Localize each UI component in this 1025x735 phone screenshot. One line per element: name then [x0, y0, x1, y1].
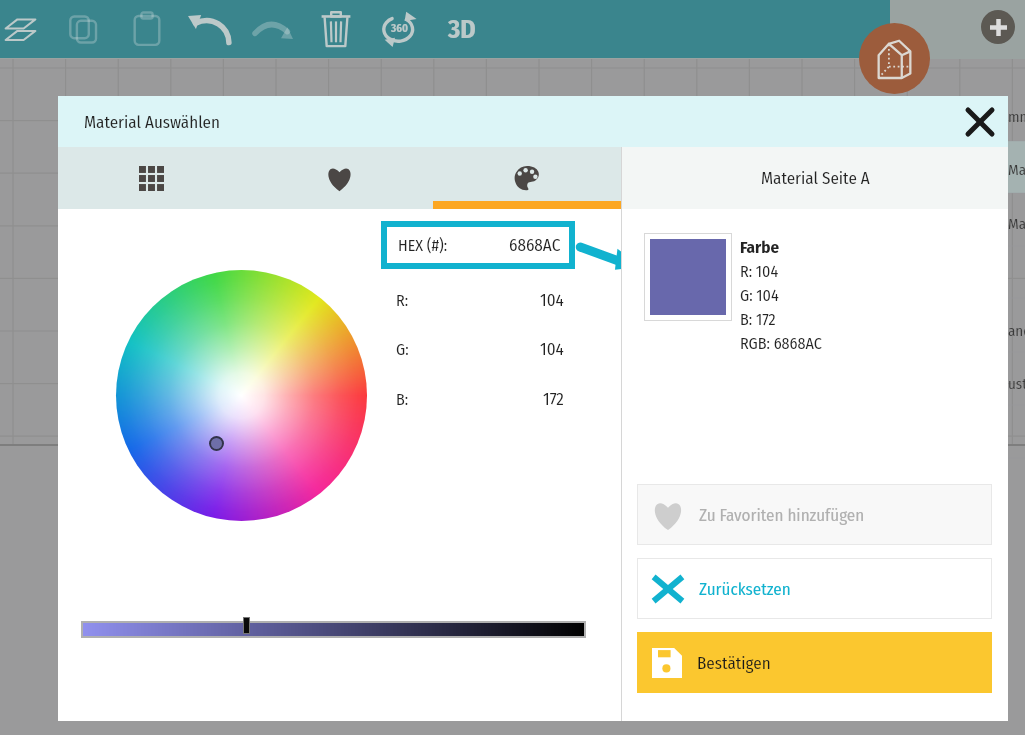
button[interactable]: Colour	[433, 147, 621, 209]
button[interactable]: Redo	[241, 0, 304, 58]
staticText: G:	[396, 340, 409, 359]
button[interactable]: Bestätigen	[637, 632, 992, 693]
button[interactable]: Copy	[52, 0, 115, 58]
button[interactable]: 360 view	[367, 0, 430, 58]
staticText: R:	[396, 291, 409, 310]
button[interactable]: Zurücksetzen	[637, 558, 992, 619]
staticText: Farbe	[740, 237, 779, 257]
staticText: HEX (#):	[398, 236, 448, 255]
button[interactable]: Paste	[115, 0, 178, 58]
staticText: 360	[391, 22, 408, 35]
staticText: R: 104	[740, 262, 779, 281]
staticText: RGB: 6868AC	[740, 334, 822, 353]
button[interactable]: mm	[1008, 105, 1025, 129]
staticText: G: 104	[740, 286, 779, 305]
button[interactable]: 3D view	[430, 0, 493, 58]
button[interactable]: Close	[959, 101, 1001, 143]
staticText: Mat	[1008, 161, 1025, 179]
staticText: B:	[396, 390, 409, 409]
staticText: Zu Favoriten hinzufügen	[699, 505, 865, 525]
staticText: 3D	[448, 14, 476, 45]
staticText: mm	[1008, 108, 1025, 126]
staticText: 104	[540, 290, 564, 310]
staticText: Material Auswählen	[84, 112, 220, 132]
button[interactable]: ust	[1008, 372, 1025, 396]
button[interactable]: Favourites	[245, 147, 433, 209]
button[interactable]: Delete	[304, 0, 367, 58]
button[interactable]: Zu Favoriten hinzufügen	[637, 484, 992, 545]
button[interactable]: Grid	[58, 147, 245, 209]
button[interactable]: and	[1008, 319, 1025, 343]
button[interactable]: Undo	[178, 0, 241, 58]
staticText: Bestätigen	[697, 653, 771, 673]
staticText: Mat	[1008, 215, 1025, 233]
button[interactable]: Add	[981, 10, 1015, 44]
button[interactable]	[83, 623, 584, 636]
button[interactable]: Mat	[1008, 158, 1025, 182]
staticText: and	[1008, 322, 1025, 340]
staticText: Zurücksetzen	[699, 579, 791, 599]
staticText: B: 172	[740, 310, 776, 329]
staticText: 104	[540, 339, 564, 359]
button[interactable]: House model	[859, 23, 930, 94]
button[interactable]: Mat	[1008, 212, 1025, 236]
button[interactable]: Layers	[0, 0, 52, 58]
staticText: ust	[1008, 375, 1025, 393]
button[interactable]: HEX (#):	[387, 227, 569, 263]
staticText: Material Seite A	[761, 168, 870, 188]
staticText: 6868AC	[509, 235, 561, 255]
staticText: 172	[543, 389, 564, 409]
